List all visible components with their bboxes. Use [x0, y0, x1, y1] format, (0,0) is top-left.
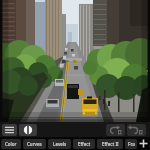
- staticText: Effect: [78, 141, 91, 147]
- staticText: Curves: [27, 141, 42, 147]
- button[interactable]: Color: [1, 139, 21, 149]
- button[interactable]: Effect: [73, 139, 95, 149]
- staticText: Levels: [53, 141, 67, 147]
- staticText: Effect II: [102, 141, 119, 147]
- button[interactable]: [19, 124, 37, 136]
- button[interactable]: Fra: [125, 139, 137, 149]
- button[interactable]: [127, 124, 146, 136]
- button[interactable]: Effect II: [97, 139, 123, 149]
- button[interactable]: [137, 137, 150, 150]
- button[interactable]: Curves: [23, 139, 46, 149]
- staticText: Color: [5, 141, 17, 147]
- button[interactable]: Levels: [48, 139, 71, 149]
- button[interactable]: [2, 124, 17, 136]
- staticText: Fra: [128, 141, 135, 147]
- button[interactable]: [106, 124, 125, 136]
